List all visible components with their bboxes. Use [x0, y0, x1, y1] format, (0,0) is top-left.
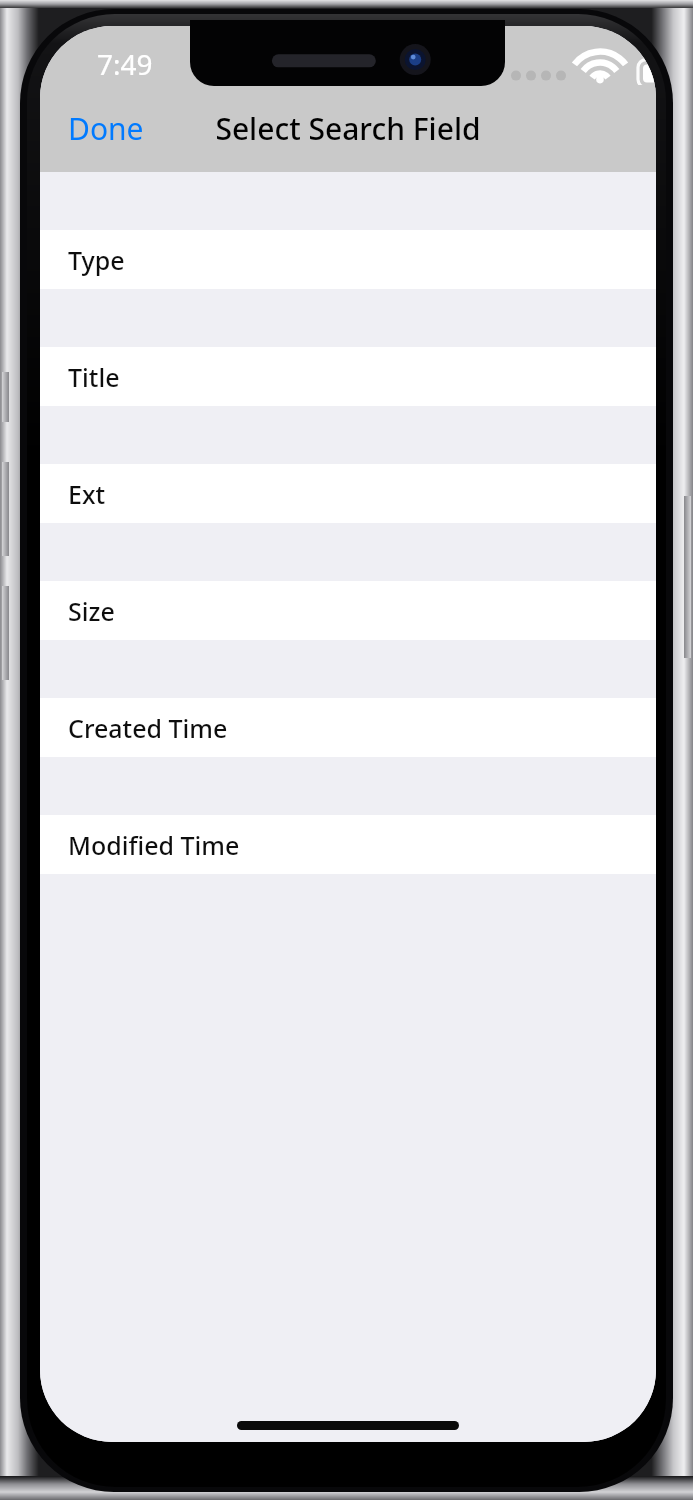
- staticText: Size: [68, 594, 115, 628]
- staticText: Title: [68, 360, 120, 394]
- button[interactable]: Ext: [40, 464, 656, 523]
- other: Signal, Wi-Fi and battery status: [510, 56, 656, 86]
- staticText: Modified Time: [68, 828, 240, 862]
- staticText: 7:49: [97, 45, 153, 83]
- staticText: Type: [68, 243, 125, 277]
- button[interactable]: Type: [40, 230, 656, 289]
- staticText: Select Search Field: [40, 108, 656, 149]
- button[interactable]: Title: [40, 347, 656, 406]
- staticText: Created Time: [68, 711, 228, 745]
- staticText: Done: [68, 108, 144, 149]
- button[interactable]: Done: [56, 96, 156, 161]
- button[interactable]: Modified Time: [40, 815, 656, 874]
- button[interactable]: Created Time: [40, 698, 656, 757]
- staticText: Ext: [68, 477, 106, 511]
- button[interactable]: Size: [40, 581, 656, 640]
